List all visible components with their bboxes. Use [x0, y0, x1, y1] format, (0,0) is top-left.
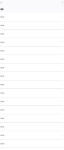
button[interactable] — [0, 97, 64, 106]
button[interactable] — [0, 47, 64, 55]
button[interactable] — [0, 106, 64, 114]
button[interactable] — [0, 13, 64, 21]
button[interactable] — [0, 89, 64, 97]
button[interactable] — [0, 140, 64, 148]
button[interactable] — [0, 114, 64, 123]
button[interactable] — [0, 30, 64, 38]
button[interactable] — [0, 72, 64, 81]
button[interactable] — [0, 21, 64, 30]
button[interactable] — [0, 131, 64, 140]
button[interactable] — [0, 64, 64, 72]
button[interactable] — [0, 55, 64, 64]
button[interactable] — [0, 81, 64, 89]
button[interactable] — [0, 38, 64, 47]
button[interactable] — [0, 123, 64, 131]
